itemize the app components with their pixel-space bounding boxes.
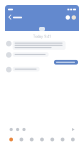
button[interactable]: Tab 3 xyxy=(27,135,37,144)
button[interactable]: Tab 4 xyxy=(37,135,47,144)
button[interactable]: Photos xyxy=(21,126,27,133)
staticText: Today 9:41 xyxy=(33,33,51,39)
button[interactable]: Tab 7 xyxy=(68,135,78,144)
button[interactable]: Tab 2 xyxy=(16,135,27,144)
button[interactable]: Back xyxy=(8,14,23,21)
button[interactable]: Tab 6 xyxy=(57,135,68,144)
button[interactable]: Camera xyxy=(14,126,21,133)
button[interactable]: Profile xyxy=(70,15,76,20)
button[interactable]: Send xyxy=(71,127,76,132)
button[interactable]: Tab 5 xyxy=(47,135,57,144)
button[interactable]: Add person xyxy=(8,126,14,133)
button[interactable]: Tab 1 xyxy=(6,135,16,144)
button[interactable]: Call xyxy=(66,15,70,20)
